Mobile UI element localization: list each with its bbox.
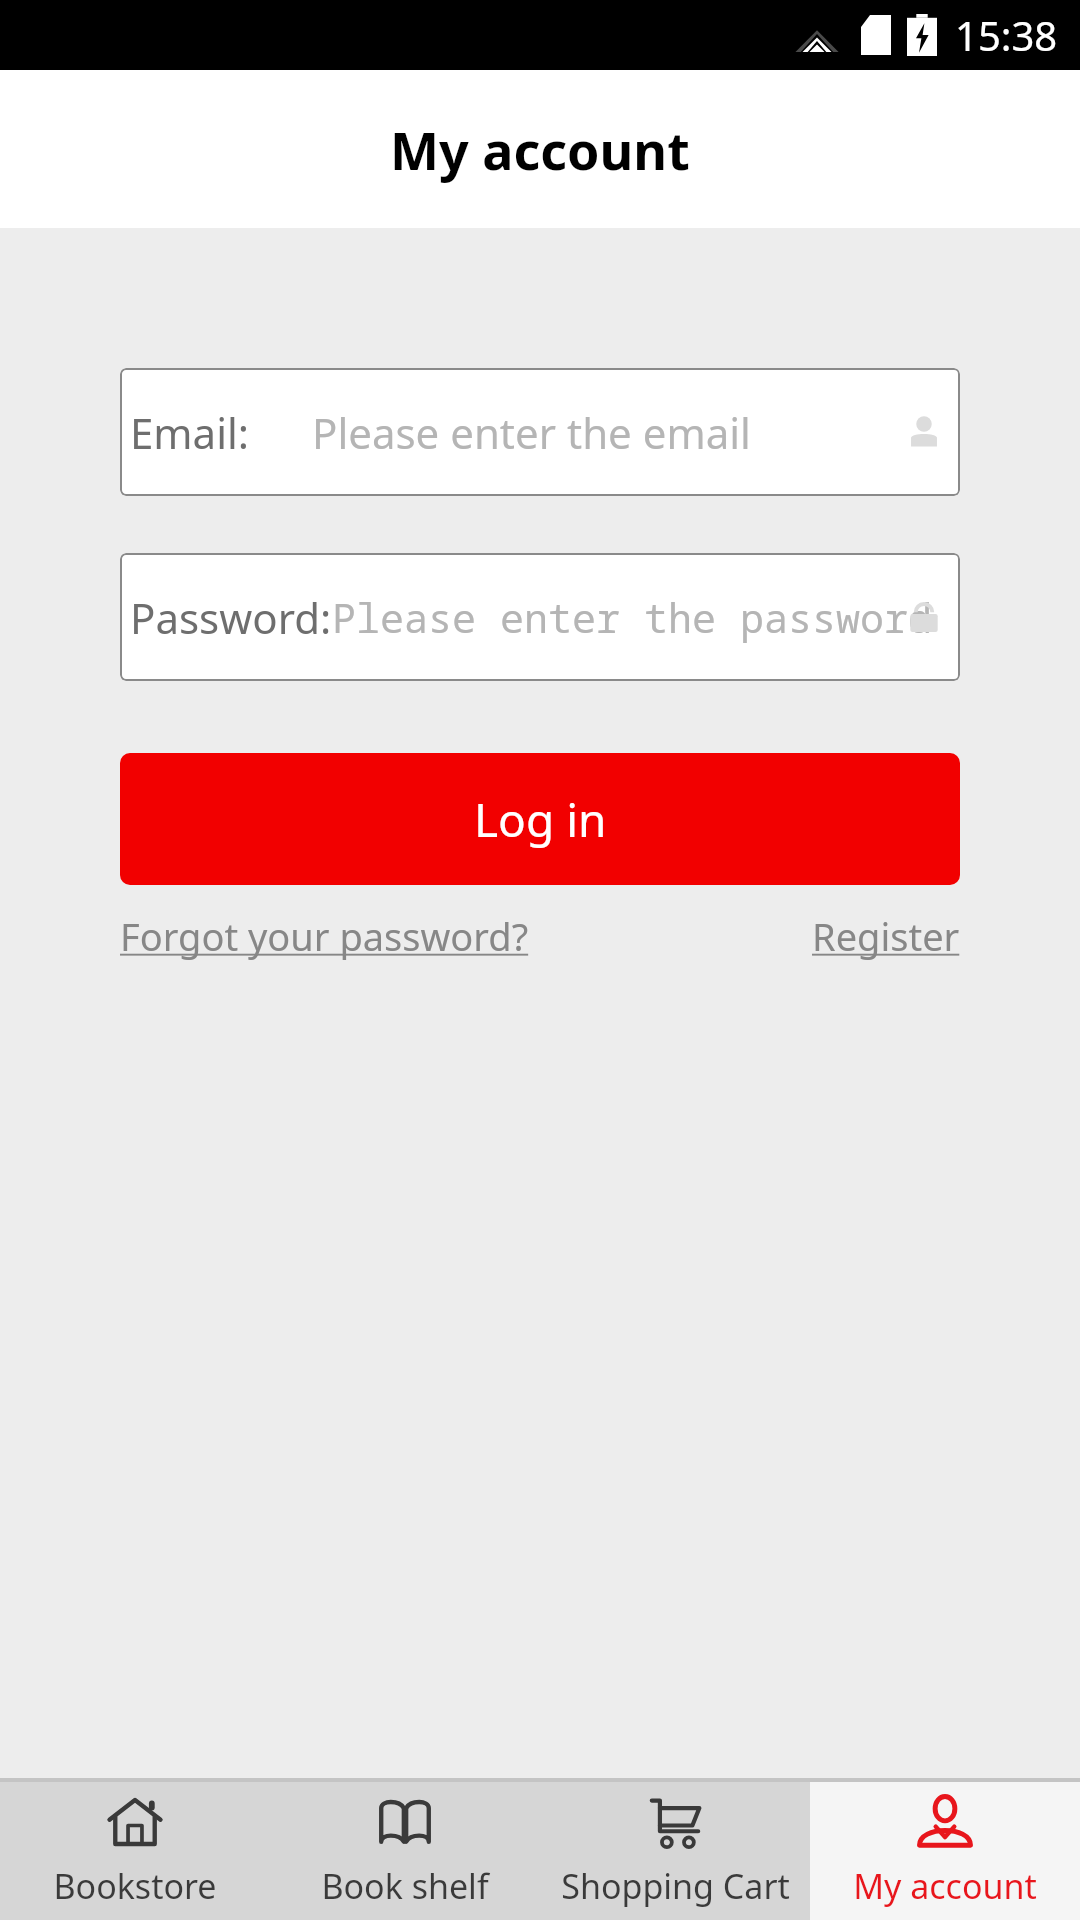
staticText: Forgot your password? — [120, 910, 529, 962]
staticText: Log in — [474, 788, 607, 851]
staticText: Password: — [130, 589, 332, 646]
staticText: Please enter the email — [312, 404, 751, 461]
button[interactable]: Password: — [120, 553, 960, 681]
button[interactable]: My account — [810, 1782, 1080, 1920]
staticText: My account — [853, 1863, 1037, 1909]
staticText: Shopping Cart — [561, 1863, 790, 1909]
button[interactable]: Log in — [120, 753, 960, 885]
button[interactable]: Shopping Cart — [540, 1782, 810, 1920]
button[interactable]: Book shelf — [270, 1782, 540, 1920]
staticText: Bookstore — [53, 1863, 217, 1909]
staticText: Email: — [130, 404, 250, 461]
button[interactable]: Register — [812, 910, 960, 962]
button[interactable]: Forgot your password? — [120, 910, 529, 962]
other: Account — [906, 414, 942, 450]
staticText: 15:38 — [955, 8, 1058, 62]
other: Password — [906, 599, 942, 635]
button[interactable]: Bookstore — [0, 1782, 270, 1920]
button[interactable]: Email: — [120, 368, 960, 496]
staticText: My account — [390, 114, 690, 185]
staticText: Book shelf — [321, 1863, 489, 1909]
staticText: Please enter the password — [332, 590, 932, 644]
staticText: Register — [812, 910, 960, 962]
